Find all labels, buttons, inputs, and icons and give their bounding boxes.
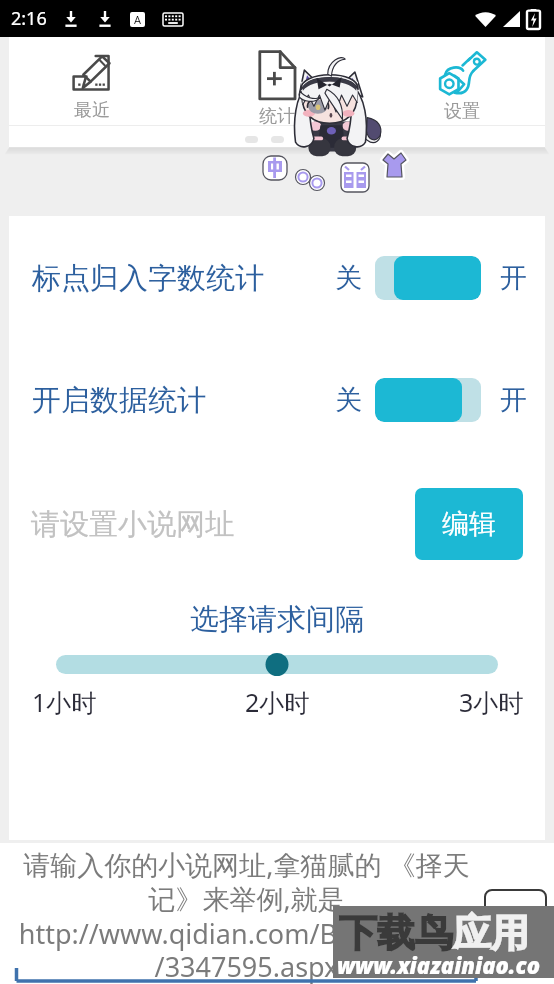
button[interactable]: 编辑: [415, 488, 523, 560]
button[interactable]: 开启数据统计: [375, 378, 481, 422]
staticText: 确定: [490, 903, 542, 936]
button[interactable]: 标点归入字数统计: [375, 256, 481, 300]
staticText: 3小时: [459, 685, 524, 719]
button[interactable]: 最近: [0, 37, 184, 125]
button[interactable]: 统计: [184, 37, 369, 125]
staticText: 设置: [444, 100, 480, 123]
staticText: 2小时: [245, 685, 310, 719]
button[interactable]: 设置: [369, 37, 554, 125]
staticText: www.xiazainiao.com: [337, 950, 554, 984]
staticText: 请输入你的小说网址,拿猫腻的 《择天 记》来举例,就是 http://www.q…: [0, 846, 493, 984]
staticText: A: [134, 12, 142, 27]
button[interactable]: 确定: [485, 890, 546, 948]
staticText: 应用: [453, 909, 529, 957]
staticText: 2:16: [11, 6, 47, 31]
staticText: 开启数据统计: [32, 382, 206, 419]
staticText: 选择请求间隔: [9, 601, 545, 638]
staticText: 下载鸟: [339, 909, 453, 957]
staticText: 最近: [74, 99, 110, 122]
staticText: 开: [500, 383, 527, 417]
staticText: 统计: [259, 105, 295, 125]
staticText: 标点归入字数统计: [32, 260, 264, 297]
staticText: 编辑: [442, 507, 496, 541]
staticText: 关: [335, 261, 362, 295]
staticText: 1小时: [32, 685, 97, 719]
staticText: 关: [335, 383, 362, 417]
staticText: 请设置小说网址: [31, 506, 234, 543]
staticText: 开: [500, 261, 527, 295]
